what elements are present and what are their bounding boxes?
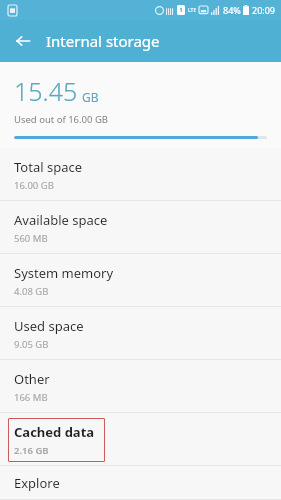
staticText: Other [14,370,50,388]
staticText: 9.05 GB [14,338,49,351]
button[interactable]: Used space [0,307,281,360]
staticText: Internal storage [46,31,160,51]
staticText: 15.45 [14,74,78,108]
staticText: Available space [14,211,108,229]
button[interactable]: System memory [0,254,281,307]
staticText: 560 MB [14,232,48,245]
staticText: Used space [14,317,84,335]
staticText: 16.00 GB [14,179,54,192]
staticText: System memory [14,264,114,282]
button[interactable]: Total space [0,148,281,201]
staticText: 20:09 [252,4,276,16]
staticText: Used out of 16.00 GB [14,113,109,126]
staticText: Cached data [14,423,95,441]
staticText: 84% [223,4,241,16]
button[interactable]: Back [10,28,36,54]
staticText: Total space [14,158,82,176]
staticText: GB [82,89,99,105]
button[interactable]: Cached data [0,413,281,466]
staticText: Explore [14,474,60,492]
button[interactable]: Explore [0,466,281,500]
staticText: 1 [179,6,183,14]
staticText: 2.16 GB [14,444,49,457]
staticText: 166 MB [14,391,48,404]
button[interactable]: Other [0,360,281,413]
staticText: 4.08 GB [14,285,49,298]
staticText: LTE [188,7,197,14]
button[interactable]: Available space [0,201,281,254]
